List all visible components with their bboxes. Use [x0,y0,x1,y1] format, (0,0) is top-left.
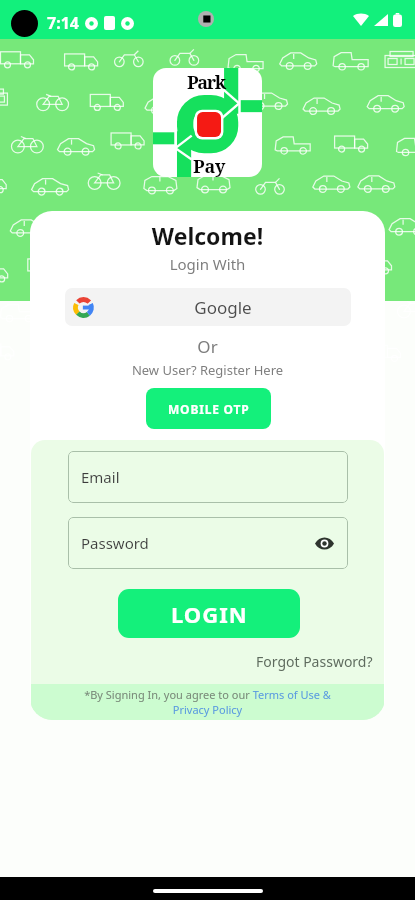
staticText: LOGIN [171,599,248,629]
button[interactable]: New User? Register Here [30,361,385,379]
staticText: Welcome! [30,220,385,251]
staticText: Password [81,533,149,553]
staticText: Pay [193,154,226,177]
staticText: MOBILE OTP [168,401,250,417]
staticText: Google [95,296,351,319]
staticText: Park [187,70,225,95]
button[interactable]: Google [65,288,351,326]
button[interactable]: MOBILE OTP [146,388,271,429]
button[interactable]: Show password [313,532,335,554]
staticText: 7:14 [47,12,79,34]
button[interactable]: LOGIN [118,589,300,638]
button[interactable]: Forgot Password? [256,652,373,671]
button[interactable]: Password [68,517,348,569]
button[interactable]: Email [68,451,348,503]
staticText: *By Signing In, you agree to our Terms o… [66,687,349,717]
staticText: Login With [30,254,385,274]
staticText: Email [81,467,120,487]
staticText: Or [30,335,385,358]
